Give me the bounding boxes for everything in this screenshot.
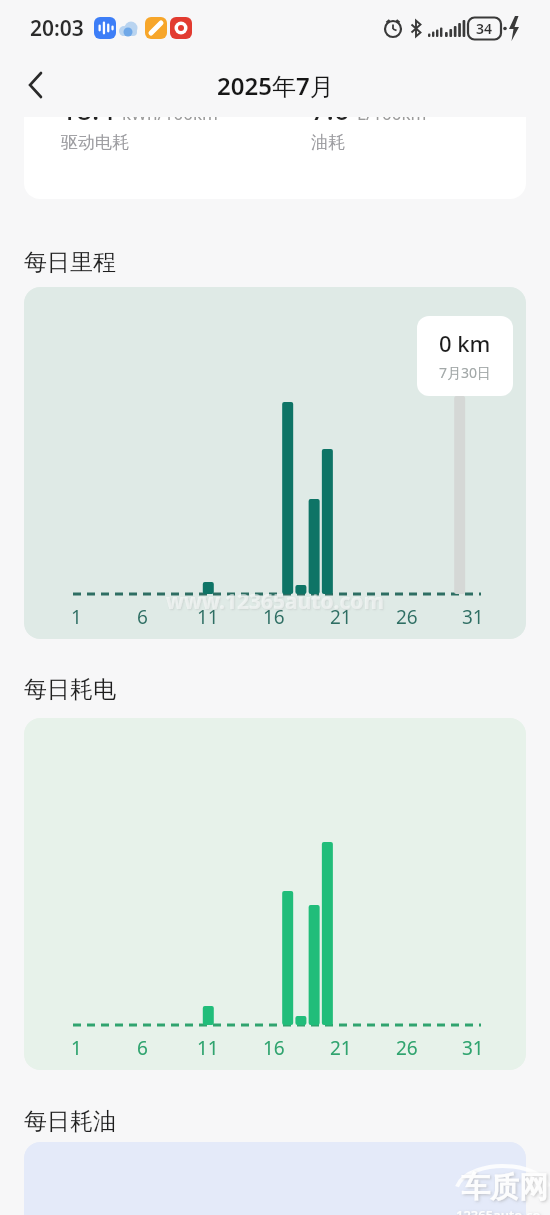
staticText: 6	[137, 604, 148, 630]
staticText: 31	[462, 1035, 484, 1061]
button[interactable]	[24, 1142, 526, 1215]
staticText: kWh/100km	[122, 117, 218, 125]
staticText: 7月30日	[439, 363, 492, 382]
staticText: 车质网	[461, 1169, 548, 1206]
staticText: 每日里程	[24, 248, 116, 277]
staticText: 16	[263, 1035, 285, 1061]
staticText: 31	[462, 604, 484, 630]
button[interactable]: 1	[24, 287, 526, 639]
staticText: 1	[71, 1035, 82, 1061]
staticText: 2025年7月	[217, 69, 334, 102]
staticText: 21	[330, 1035, 352, 1061]
staticText: 1	[71, 604, 82, 630]
staticText: 20:03	[30, 14, 84, 43]
staticText: 驱动电耗	[61, 132, 129, 153]
button[interactable]: 0 km	[417, 316, 513, 396]
staticText: 18.4	[61, 117, 122, 128]
button[interactable]	[26, 70, 46, 100]
staticText: 油耗	[311, 132, 345, 153]
staticText: 0 km	[439, 328, 491, 358]
staticText: L/100km	[357, 117, 427, 125]
staticText: www.12365auto.com	[166, 587, 384, 616]
staticText: 26	[396, 1035, 418, 1061]
staticText: 7.6	[311, 117, 357, 128]
staticText: 11	[197, 1035, 219, 1061]
button[interactable]: 1	[24, 718, 526, 1070]
staticText: 6	[137, 1035, 148, 1061]
staticText: 11	[197, 604, 219, 630]
button[interactable]: 18.4	[24, 117, 526, 199]
staticText: 每日耗油	[24, 1107, 116, 1136]
staticText: 16	[263, 604, 285, 630]
staticText: 每日耗电	[24, 675, 116, 704]
staticText: 34	[476, 19, 493, 38]
staticText: 12365auto.com	[456, 1206, 550, 1215]
staticText: 21	[330, 604, 352, 630]
staticText: 26	[396, 604, 418, 630]
